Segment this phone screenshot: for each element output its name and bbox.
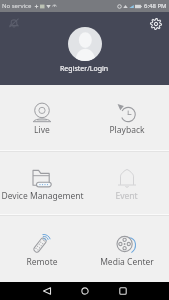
staticText: 6:48 PM (144, 2, 167, 10)
button[interactable]: Home (77, 283, 93, 299)
button[interactable]: Recents (115, 283, 131, 299)
button[interactable]: Media Center (84, 216, 169, 282)
button[interactable]: Remote (0, 216, 84, 282)
button[interactable]: Settings (150, 18, 162, 30)
staticText: Register/Login (60, 64, 109, 74)
button[interactable]: Live (0, 85, 84, 150)
button[interactable] (68, 27, 102, 61)
staticText: Event (115, 190, 138, 202)
staticText: Device Management (1, 190, 84, 202)
button[interactable]: Back (39, 283, 55, 299)
staticText: No service (2, 2, 32, 10)
button[interactable]: Device Management (0, 152, 84, 214)
button[interactable]: Playback (84, 85, 169, 150)
staticText: Live (34, 124, 50, 136)
button[interactable]: Notifications off (8, 17, 20, 29)
button[interactable]: Event (84, 152, 169, 214)
staticText: Media Center (100, 256, 154, 268)
staticText: Playback (109, 124, 145, 136)
staticText: Remote (26, 256, 58, 268)
